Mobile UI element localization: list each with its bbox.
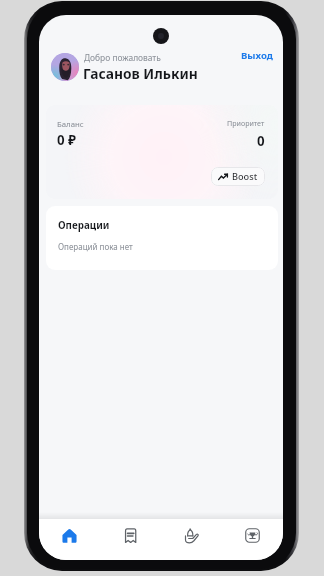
staticText: 0 ₽ (57, 131, 77, 149)
staticText: Boost (232, 170, 258, 183)
staticText: Выход (241, 49, 273, 62)
staticText: Операций пока нет (58, 241, 133, 252)
button[interactable]: Receipts (100, 519, 161, 560)
button[interactable]: Donations (161, 519, 222, 560)
staticText: 0 (257, 132, 265, 150)
staticText: Приоритет (227, 118, 265, 128)
staticText: Добро пожаловать (84, 52, 161, 63)
button[interactable]: Home (39, 519, 100, 560)
staticText: Операции (58, 219, 110, 232)
staticText: Баланс (57, 119, 84, 130)
button[interactable]: Выход (236, 45, 278, 66)
button[interactable]: Boost (211, 167, 265, 186)
staticText: Гасанов Илькин (83, 64, 198, 83)
button[interactable]: Awards (222, 519, 283, 560)
